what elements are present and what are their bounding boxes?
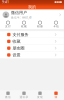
staticText: 设置: [12, 52, 20, 57]
staticText: 9:41: [2, 0, 9, 4]
staticText: 我的: [28, 4, 36, 9]
staticText: 微信号: wxid_x8: [11, 16, 32, 19]
button[interactable]: 支付: [0, 21, 16, 28]
staticText: 微信: [5, 95, 11, 99]
button[interactable]: 卡包: [48, 21, 64, 28]
button[interactable]: 发现: [32, 92, 48, 99]
staticText: 发现: [37, 95, 43, 99]
staticText: 通讯录: [19, 95, 28, 99]
staticText: 微信用户: [11, 10, 27, 15]
staticText: 收藏: [12, 39, 20, 44]
staticText: 我: [54, 95, 57, 99]
button[interactable]: 收藏: [4, 38, 59, 45]
button[interactable]: 微信: [0, 92, 16, 99]
button[interactable]: 朋友圈: [4, 45, 59, 51]
button[interactable]: 设置: [4, 52, 59, 58]
staticText: 朋友圈: [12, 46, 24, 51]
staticText: 支付: [5, 25, 11, 28]
button[interactable]: 我: [48, 92, 64, 99]
staticText: 相册: [37, 25, 43, 28]
staticText: 卡包: [53, 25, 59, 28]
button[interactable]: 相册: [32, 21, 48, 28]
button[interactable]: 收藏: [16, 21, 32, 28]
button[interactable]: 支付服务: [4, 31, 59, 38]
button[interactable]: 微信用户: [0, 10, 64, 20]
staticText: 支付服务: [12, 32, 28, 37]
staticText: 收藏: [21, 25, 27, 28]
button[interactable]: 通讯录: [16, 92, 32, 99]
